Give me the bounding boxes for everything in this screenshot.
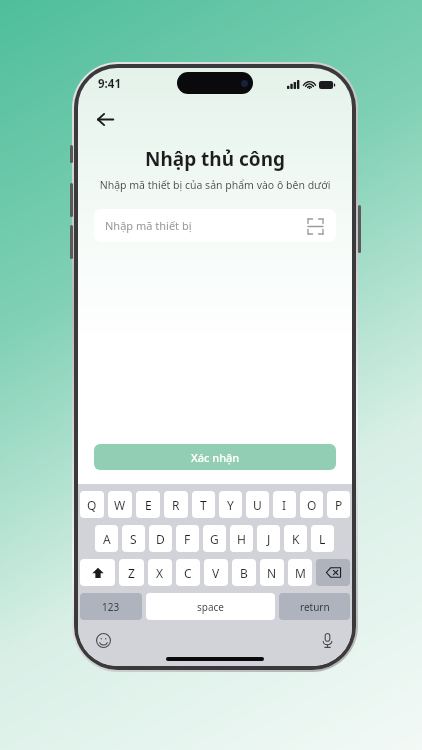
staticText: C [184,565,192,581]
button[interactable]: P [327,491,350,518]
button[interactable]: G [203,525,226,552]
button[interactable]: X [148,559,172,586]
staticText: P [335,497,343,513]
staticText: Y [227,497,234,513]
button[interactable]: 123 [80,593,142,620]
staticText: N [267,565,277,581]
staticText: U [253,497,262,513]
staticText: K [292,531,300,547]
button[interactable]: S [122,525,145,552]
staticText: Nhập mã thiết bị của sản phẩm vào ô bên … [90,178,340,192]
staticText: H [237,531,246,547]
button[interactable]: O [300,491,323,518]
staticText: T [200,497,207,513]
staticText: O [307,497,317,513]
staticText: 123 [102,600,120,614]
button[interactable]: L [311,525,334,552]
staticText: Xác nhận [191,450,240,465]
staticText: space [197,600,224,614]
staticText: Nhập mã thiết bị [105,218,305,233]
button[interactable]: T [192,491,215,518]
staticText: return [300,600,330,614]
button[interactable]: Scan code [305,216,325,236]
button[interactable]: A [95,525,118,552]
staticText: Q [87,497,97,513]
button[interactable]: U [246,491,269,518]
button[interactable]: N [260,559,284,586]
staticText: B [240,565,248,581]
button[interactable]: D [149,525,172,552]
button[interactable]: Q [80,491,104,518]
button[interactable]: Nhập mã thiết bị [94,209,336,242]
staticText: R [172,497,180,513]
button[interactable]: Dictation [317,630,337,650]
button[interactable]: Z [119,559,144,586]
staticText: J [267,531,271,547]
button[interactable]: C [176,559,200,586]
staticText: V [212,565,220,581]
button[interactable]: E [136,491,160,518]
button[interactable]: Backspace [316,559,350,586]
button[interactable]: B [232,559,256,586]
staticText: F [184,531,191,547]
staticText: G [210,531,219,547]
button[interactable]: Y [219,491,242,518]
button[interactable]: J [257,525,280,552]
staticText: Z [128,565,135,581]
staticText: D [156,531,165,547]
button[interactable]: V [204,559,228,586]
button[interactable]: H [230,525,253,552]
staticText: I [282,497,287,513]
staticText: Nhập thủ công [78,146,352,172]
button[interactable]: I [273,491,296,518]
button[interactable]: Back [88,102,122,136]
button[interactable]: M [288,559,312,586]
staticText: 9:41 [98,76,121,92]
staticText: A [103,531,111,547]
staticText: L [319,531,326,547]
staticText: X [156,565,164,581]
staticText: S [130,531,137,547]
button[interactable]: W [108,491,132,518]
staticText: W [114,497,126,513]
button[interactable]: space [146,593,275,620]
button[interactable]: R [164,491,188,518]
staticText: E [145,497,152,513]
button[interactable]: K [284,525,307,552]
staticText: M [295,565,306,581]
button[interactable]: Emoji [93,630,113,650]
button[interactable]: Shift [80,559,115,586]
button[interactable]: return [279,593,350,620]
button[interactable]: F [176,525,199,552]
button[interactable]: Xác nhận [94,444,336,470]
